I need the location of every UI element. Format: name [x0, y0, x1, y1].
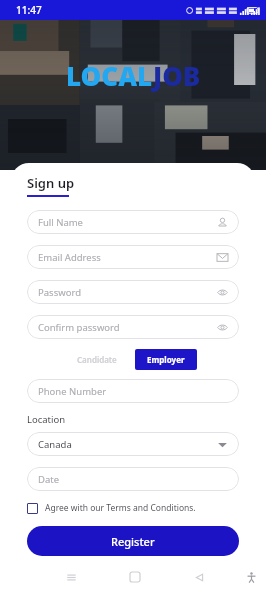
button[interactable]: Home: [122, 564, 148, 590]
button[interactable]: Register: [27, 526, 239, 556]
button[interactable]: Phone Number: [27, 379, 239, 403]
staticText: Phone Number: [38, 385, 107, 398]
staticText: Email Address: [38, 251, 101, 264]
staticText: Full Name: [38, 216, 83, 229]
button[interactable]: Candidate: [69, 349, 125, 370]
staticText: 11:47: [16, 3, 42, 17]
staticText: Canada: [38, 438, 72, 451]
staticText: Date: [38, 473, 60, 486]
button[interactable]: Canada: [27, 432, 239, 456]
button[interactable]: Agree with our Terms and Conditions.: [27, 502, 239, 514]
button[interactable]: Employer: [135, 349, 197, 370]
staticText: Agree with our Terms and Conditions.: [45, 502, 196, 514]
button[interactable]: Email Address: [27, 245, 239, 269]
button[interactable]: Recent apps: [58, 564, 84, 590]
staticText: Employer: [147, 354, 185, 365]
button[interactable]: Full Name: [27, 210, 239, 234]
button[interactable]: Date: [27, 467, 239, 491]
staticText: Sign up: [27, 174, 75, 192]
button[interactable]: Password: [27, 280, 239, 304]
staticText: Location: [27, 413, 66, 426]
staticText: JOB: [153, 58, 201, 93]
button[interactable]: Confirm password: [27, 315, 239, 339]
staticText: LOCAL: [66, 58, 153, 93]
button[interactable]: Accessibility: [238, 564, 264, 590]
staticText: Register: [111, 534, 155, 549]
staticText: Confirm password: [38, 321, 120, 334]
button[interactable]: Back: [186, 564, 212, 590]
staticText: Candidate: [77, 354, 117, 365]
staticText: Password: [38, 286, 81, 299]
